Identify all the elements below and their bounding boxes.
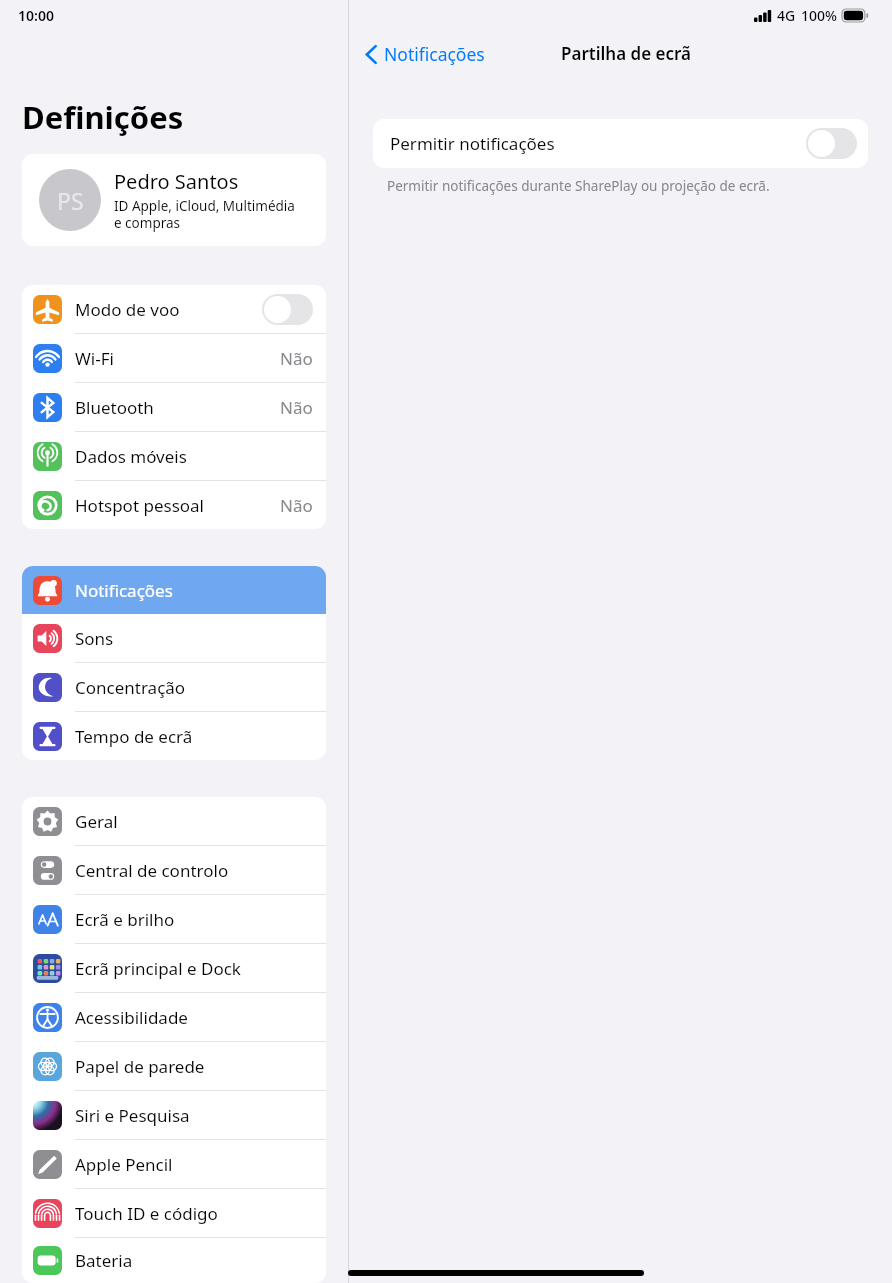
button[interactable]: Wi-Fi: [22, 334, 326, 383]
staticText: PS: [57, 185, 84, 216]
button[interactable]: Touch ID e código: [22, 1189, 326, 1238]
button[interactable]: Bateria: [22, 1238, 326, 1283]
button[interactable]: Modo de voo: [22, 285, 326, 334]
staticText: 4G: [777, 6, 796, 25]
staticText: Siri e Pesquisa: [75, 1104, 313, 1127]
staticText: Wi-Fi: [75, 347, 280, 370]
button[interactable]: [262, 294, 313, 325]
staticText: Apple Pencil: [75, 1153, 313, 1176]
staticText: Hotspot pessoal: [75, 494, 280, 517]
staticText: Modo de voo: [75, 298, 262, 321]
button[interactable]: PS: [22, 154, 326, 246]
button[interactable]: Geral: [22, 797, 326, 846]
staticText: Papel de parede: [75, 1055, 313, 1078]
staticText: Não: [280, 494, 313, 517]
staticText: Não: [280, 347, 313, 370]
button[interactable]: Ecrã e brilho: [22, 895, 326, 944]
staticText: Sons: [75, 627, 313, 650]
button[interactable]: Ecrã principal e Dock: [22, 944, 326, 993]
staticText: 10:00: [18, 6, 54, 25]
staticText: ID Apple, iCloud, Multimédia e compras: [114, 197, 295, 232]
staticText: Bluetooth: [75, 396, 280, 419]
staticText: Permitir notificações durante SharePlay …: [387, 177, 770, 195]
staticText: 100%: [801, 6, 837, 25]
staticText: Tempo de ecrã: [75, 725, 313, 748]
staticText: Acessibilidade: [75, 1006, 313, 1029]
button[interactable]: Hotspot pessoal: [22, 481, 326, 529]
button[interactable]: Dados móveis: [22, 432, 326, 481]
button[interactable]: Central de controlo: [22, 846, 326, 895]
button[interactable]: Sons: [22, 614, 326, 663]
button[interactable]: Tempo de ecrã: [22, 712, 326, 760]
button[interactable]: Permitir notificações: [373, 119, 868, 168]
staticText: Geral: [75, 810, 313, 833]
button[interactable]: Papel de parede: [22, 1042, 326, 1091]
staticText: Dados móveis: [75, 445, 313, 468]
button[interactable]: Apple Pencil: [22, 1140, 326, 1189]
staticText: Notificações: [384, 42, 485, 66]
staticText: Touch ID e código: [75, 1202, 313, 1225]
staticText: Bateria: [75, 1249, 313, 1272]
button[interactable]: Notificações: [361, 38, 489, 70]
button[interactable]: Bluetooth: [22, 383, 326, 432]
button[interactable]: Siri e Pesquisa: [22, 1091, 326, 1140]
staticText: Concentração: [75, 676, 313, 699]
staticText: Pedro Santos: [114, 168, 239, 195]
staticText: Definições: [22, 96, 184, 138]
staticText: Central de controlo: [75, 859, 313, 882]
button[interactable]: [806, 128, 857, 159]
staticText: Notificações: [75, 579, 313, 602]
staticText: Partilha de ecrã: [561, 42, 691, 65]
staticText: Não: [280, 396, 313, 419]
staticText: Permitir notificações: [390, 132, 806, 155]
staticText: Ecrã e brilho: [75, 908, 313, 931]
button[interactable]: Concentração: [22, 663, 326, 712]
button[interactable]: Notificações: [22, 566, 326, 614]
button[interactable]: Acessibilidade: [22, 993, 326, 1042]
staticText: Ecrã principal e Dock: [75, 957, 313, 980]
